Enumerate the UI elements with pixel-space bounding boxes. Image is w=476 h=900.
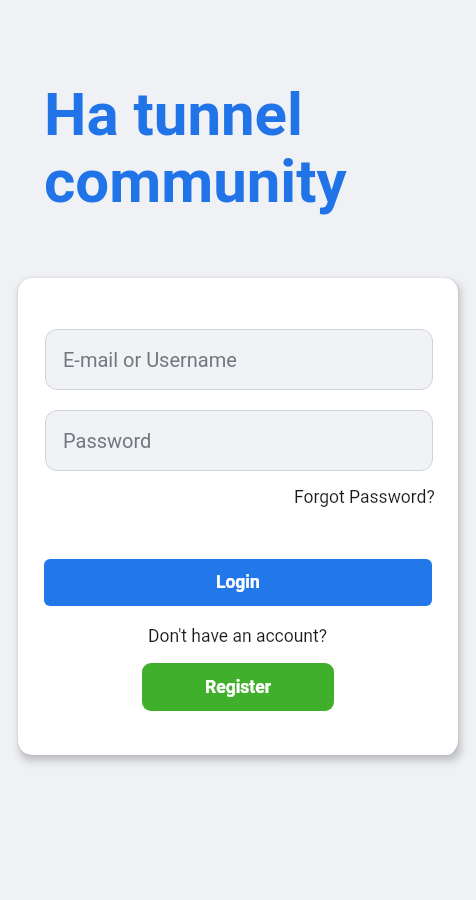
staticText: E-mail or Username bbox=[63, 348, 237, 371]
staticText: Don't have an account? bbox=[148, 626, 328, 647]
button[interactable]: Password bbox=[45, 410, 433, 471]
staticText: Register bbox=[205, 677, 272, 698]
staticText: Ha tunnel community bbox=[44, 79, 347, 217]
staticText: Login bbox=[216, 572, 260, 593]
button[interactable]: E-mail or Username bbox=[45, 329, 433, 390]
button[interactable]: Forgot Password? bbox=[294, 487, 435, 508]
staticText: Password bbox=[63, 429, 152, 452]
button[interactable]: Login bbox=[44, 559, 432, 606]
button[interactable]: Register bbox=[142, 663, 334, 711]
